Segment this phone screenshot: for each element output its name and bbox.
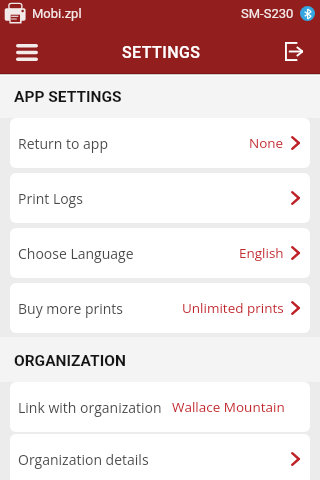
staticText: English — [239, 244, 284, 262]
staticText: Wallace Mountain — [172, 398, 285, 416]
staticText: Organization details — [18, 450, 149, 469]
button[interactable]: Organization details — [10, 434, 310, 480]
staticText: Return to app — [18, 134, 108, 153]
button[interactable]: Print Logs — [10, 173, 310, 223]
button[interactable]: Choose Language — [10, 228, 310, 278]
button[interactable]: Return to app — [10, 118, 310, 168]
button[interactable]: Menu — [0, 26, 54, 74]
staticText: SM-S230 — [241, 6, 294, 21]
staticText: Unlimited prints — [182, 299, 284, 317]
staticText: Buy more prints — [18, 299, 123, 318]
button[interactable]: Log out — [268, 26, 320, 74]
button[interactable]: Link with organization — [10, 382, 310, 432]
staticText: ORGANIZATION — [14, 352, 126, 370]
staticText: SETTINGS — [122, 43, 201, 62]
staticText: Choose Language — [18, 244, 134, 263]
button[interactable]: Buy more prints — [10, 283, 310, 333]
staticText: Print Logs — [18, 189, 83, 208]
staticText: None — [249, 134, 284, 152]
staticText: APP SETTINGS — [14, 88, 122, 106]
staticText: Link with organization — [18, 398, 162, 417]
staticText: Mobi.zpl — [32, 6, 82, 21]
